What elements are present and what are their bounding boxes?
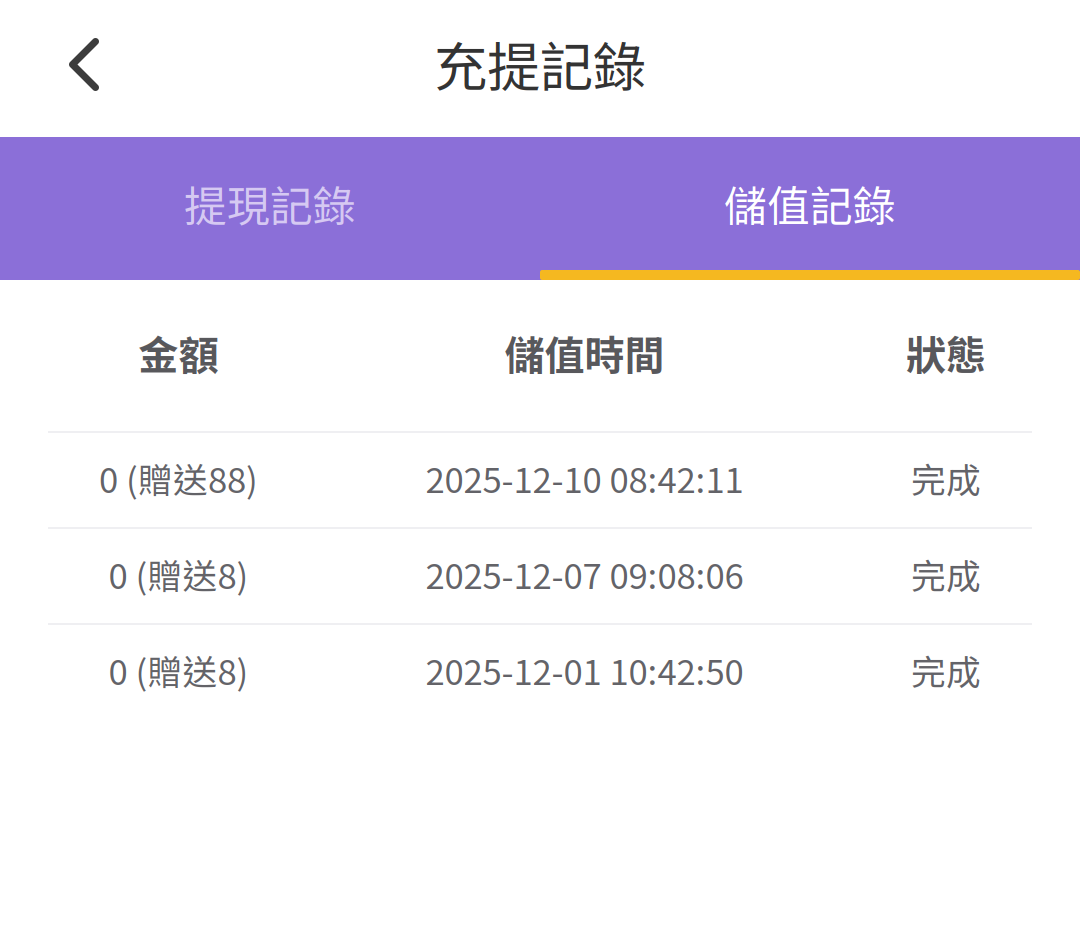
staticText: 0 (贈送88) [99, 453, 258, 503]
button[interactable]: 儲值記錄 [540, 137, 1080, 280]
staticText: 0 (贈送8) [108, 645, 248, 695]
staticText: 狀態 [906, 323, 986, 381]
staticText: 金額 [138, 323, 218, 381]
button[interactable]: 0 (贈送8) [0, 625, 1080, 719]
staticText: 2025-12-10 08:42:11 [425, 453, 743, 503]
staticText: 完成 [911, 645, 981, 695]
button[interactable]: 0 (贈送8) [0, 529, 1080, 623]
staticText: 2025-12-07 09:08:06 [425, 549, 743, 599]
staticText: 提現記錄 [184, 173, 356, 234]
staticText: 儲值記錄 [724, 173, 896, 234]
button[interactable]: 0 (贈送88) [0, 433, 1080, 527]
staticText: 2025-12-01 10:42:50 [425, 645, 743, 695]
button[interactable]: 提現記錄 [0, 137, 540, 280]
button[interactable]: Back [0, 9, 168, 127]
staticText: 充提記錄 [434, 25, 646, 102]
staticText: 完成 [911, 549, 981, 599]
staticText: 0 (贈送8) [108, 549, 248, 599]
staticText: 完成 [911, 453, 981, 503]
staticText: 儲值時間 [504, 323, 664, 381]
